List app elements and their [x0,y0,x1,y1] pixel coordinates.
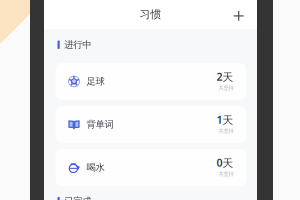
staticText: 背单词 [86,119,113,130]
staticText: 进行中 [64,39,91,50]
staticText: 喝水 [86,162,104,173]
staticText: 足球 [86,76,104,87]
staticText: 共坚持 [218,85,233,91]
staticText: 习惯 [139,8,161,21]
staticText: 0天 [216,156,233,170]
staticText: 已完成 [64,195,91,200]
button[interactable]: 足球 [55,63,246,100]
button[interactable]: 背单词 [55,106,246,143]
staticText: 共坚持 [218,128,233,134]
button[interactable]: Add habit [225,1,257,28]
staticText: 1天 [216,113,233,127]
staticText: 2天 [216,70,233,84]
button[interactable]: 喝水 [55,149,246,186]
staticText: 共坚持 [218,171,233,177]
